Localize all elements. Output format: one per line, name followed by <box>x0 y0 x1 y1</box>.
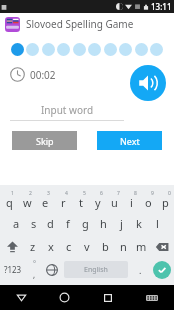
staticText: ?123 <box>4 264 22 275</box>
button[interactable]: Skip <box>12 131 77 150</box>
staticText: 00:02 <box>30 68 56 82</box>
staticText: w <box>23 195 32 210</box>
staticText: v <box>84 239 90 254</box>
button[interactable]: v <box>78 235 96 258</box>
staticText: f <box>66 216 70 231</box>
staticText: y <box>95 195 101 210</box>
button[interactable]: Back <box>0 285 43 310</box>
button[interactable]: m <box>132 235 150 258</box>
button[interactable]: n <box>114 235 132 258</box>
staticText: Skip <box>36 135 54 147</box>
button[interactable]: d <box>42 212 59 235</box>
staticText: 3 <box>47 190 50 197</box>
button[interactable] <box>11 43 24 56</box>
staticText: z <box>30 239 36 254</box>
button[interactable]: . <box>131 258 149 281</box>
button[interactable]: Space <box>64 261 128 278</box>
staticText: s <box>31 216 37 231</box>
staticText: d <box>47 216 54 231</box>
staticText: English <box>84 265 108 275</box>
staticText: Input word <box>10 103 124 117</box>
button[interactable] <box>73 43 86 56</box>
button[interactable]: ?123 <box>0 258 25 281</box>
staticText: , <box>33 269 36 280</box>
staticText: Slovoed Spelling Game <box>26 17 134 31</box>
button[interactable]: l <box>148 212 166 235</box>
button[interactable]: Change language <box>43 258 61 281</box>
staticText: 13:11 <box>151 1 172 12</box>
staticText: j <box>120 216 123 231</box>
staticText: u <box>111 195 118 210</box>
staticText: p <box>162 195 169 210</box>
staticText: 6 <box>100 190 103 197</box>
staticText: x <box>48 239 54 254</box>
staticText: l <box>156 216 159 231</box>
button[interactable] <box>135 43 148 56</box>
button[interactable]: 4 <box>54 189 72 212</box>
staticText: n <box>120 239 127 254</box>
staticText: c <box>66 239 72 254</box>
button[interactable]: h <box>94 212 112 235</box>
button[interactable]: 8 <box>123 189 140 212</box>
button[interactable]: Switch keyboard <box>130 285 174 310</box>
button[interactable]: 0 <box>157 189 174 212</box>
button[interactable]: f <box>59 212 76 235</box>
staticText: k <box>136 216 142 231</box>
button[interactable]: Enter <box>153 261 171 279</box>
button[interactable]: 6 <box>89 189 106 212</box>
button[interactable]: s <box>25 212 42 235</box>
button[interactable]: 9 <box>140 189 157 212</box>
button[interactable]: b <box>96 235 114 258</box>
button[interactable]: Up <box>4 16 21 33</box>
staticText: a <box>13 216 20 231</box>
staticText: 1 <box>11 190 14 197</box>
staticText: b <box>102 239 109 254</box>
staticText: 4 <box>65 190 68 197</box>
button[interactable]: g <box>76 212 94 235</box>
button[interactable]: Play pronunciation <box>130 65 166 101</box>
staticText: t <box>79 195 83 210</box>
button[interactable]: Next <box>97 131 162 150</box>
staticText: 8 <box>134 190 137 197</box>
button[interactable]: 2 <box>18 189 36 212</box>
button[interactable]: 1 <box>0 189 18 212</box>
staticText: 9 <box>151 190 154 197</box>
button[interactable]: 3 <box>36 189 54 212</box>
button[interactable]: Backspace <box>150 235 174 258</box>
staticText: h <box>100 216 107 231</box>
staticText: 2 <box>29 190 32 197</box>
button[interactable]: j <box>112 212 130 235</box>
button[interactable] <box>119 43 132 56</box>
button[interactable]: 5 <box>72 189 89 212</box>
staticText: . <box>139 264 142 276</box>
button[interactable] <box>26 43 39 56</box>
button[interactable]: a <box>8 212 25 235</box>
button[interactable] <box>104 43 117 56</box>
button[interactable]: c <box>60 235 78 258</box>
button[interactable] <box>150 43 163 56</box>
staticText: e <box>42 195 49 210</box>
staticText: ° <box>33 259 36 269</box>
button[interactable] <box>42 43 55 56</box>
staticText: g <box>82 216 89 231</box>
button[interactable] <box>88 43 101 56</box>
staticText: 5 <box>83 190 86 197</box>
staticText: i <box>130 195 133 210</box>
staticText: 7 <box>117 190 120 197</box>
button[interactable]: ° <box>25 258 43 281</box>
button[interactable]: x <box>42 235 60 258</box>
button[interactable]: Shift <box>0 235 24 258</box>
button[interactable]: Recents <box>86 285 130 310</box>
staticText: Next <box>120 135 140 147</box>
staticText: 0 <box>168 190 171 197</box>
button[interactable]: z <box>24 235 42 258</box>
staticText: o <box>145 195 152 210</box>
button[interactable] <box>57 43 70 56</box>
button[interactable]: Home <box>43 285 86 310</box>
staticText: q <box>6 195 13 210</box>
staticText: m <box>136 239 147 254</box>
button[interactable]: k <box>130 212 148 235</box>
staticText: r <box>61 195 66 210</box>
button[interactable]: 7 <box>106 189 123 212</box>
